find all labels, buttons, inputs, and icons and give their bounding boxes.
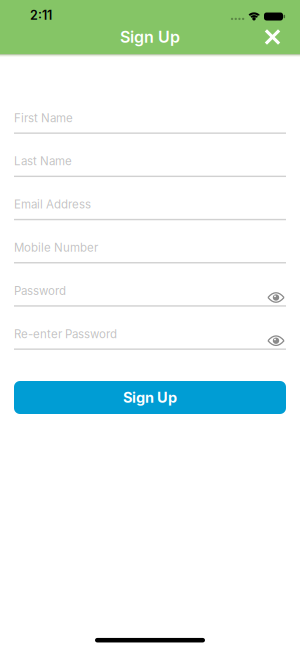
button[interactable]: First Name: [14, 103, 286, 134]
staticText: 2:11: [30, 8, 52, 23]
staticText: Last Name: [14, 154, 72, 168]
button[interactable]: Password: [14, 276, 286, 307]
staticText: Re-enter Password: [14, 327, 117, 341]
staticText: Password: [14, 284, 66, 298]
button[interactable]: Email Address: [14, 190, 286, 220]
button[interactable]: Last Name: [14, 147, 286, 177]
button[interactable]: Show re-entered password: [267, 334, 285, 347]
button[interactable]: Sign Up: [14, 381, 286, 414]
button[interactable]: Mobile Number: [14, 233, 286, 263]
button[interactable]: Close: [258, 23, 286, 51]
staticText: First Name: [14, 111, 73, 125]
button[interactable]: Re-enter Password: [14, 319, 286, 350]
button[interactable]: Show password: [267, 291, 285, 304]
staticText: Sign Up: [123, 389, 177, 406]
staticText: Sign Up: [120, 27, 180, 47]
staticText: Email Address: [14, 197, 91, 211]
staticText: Mobile Number: [14, 241, 98, 254]
